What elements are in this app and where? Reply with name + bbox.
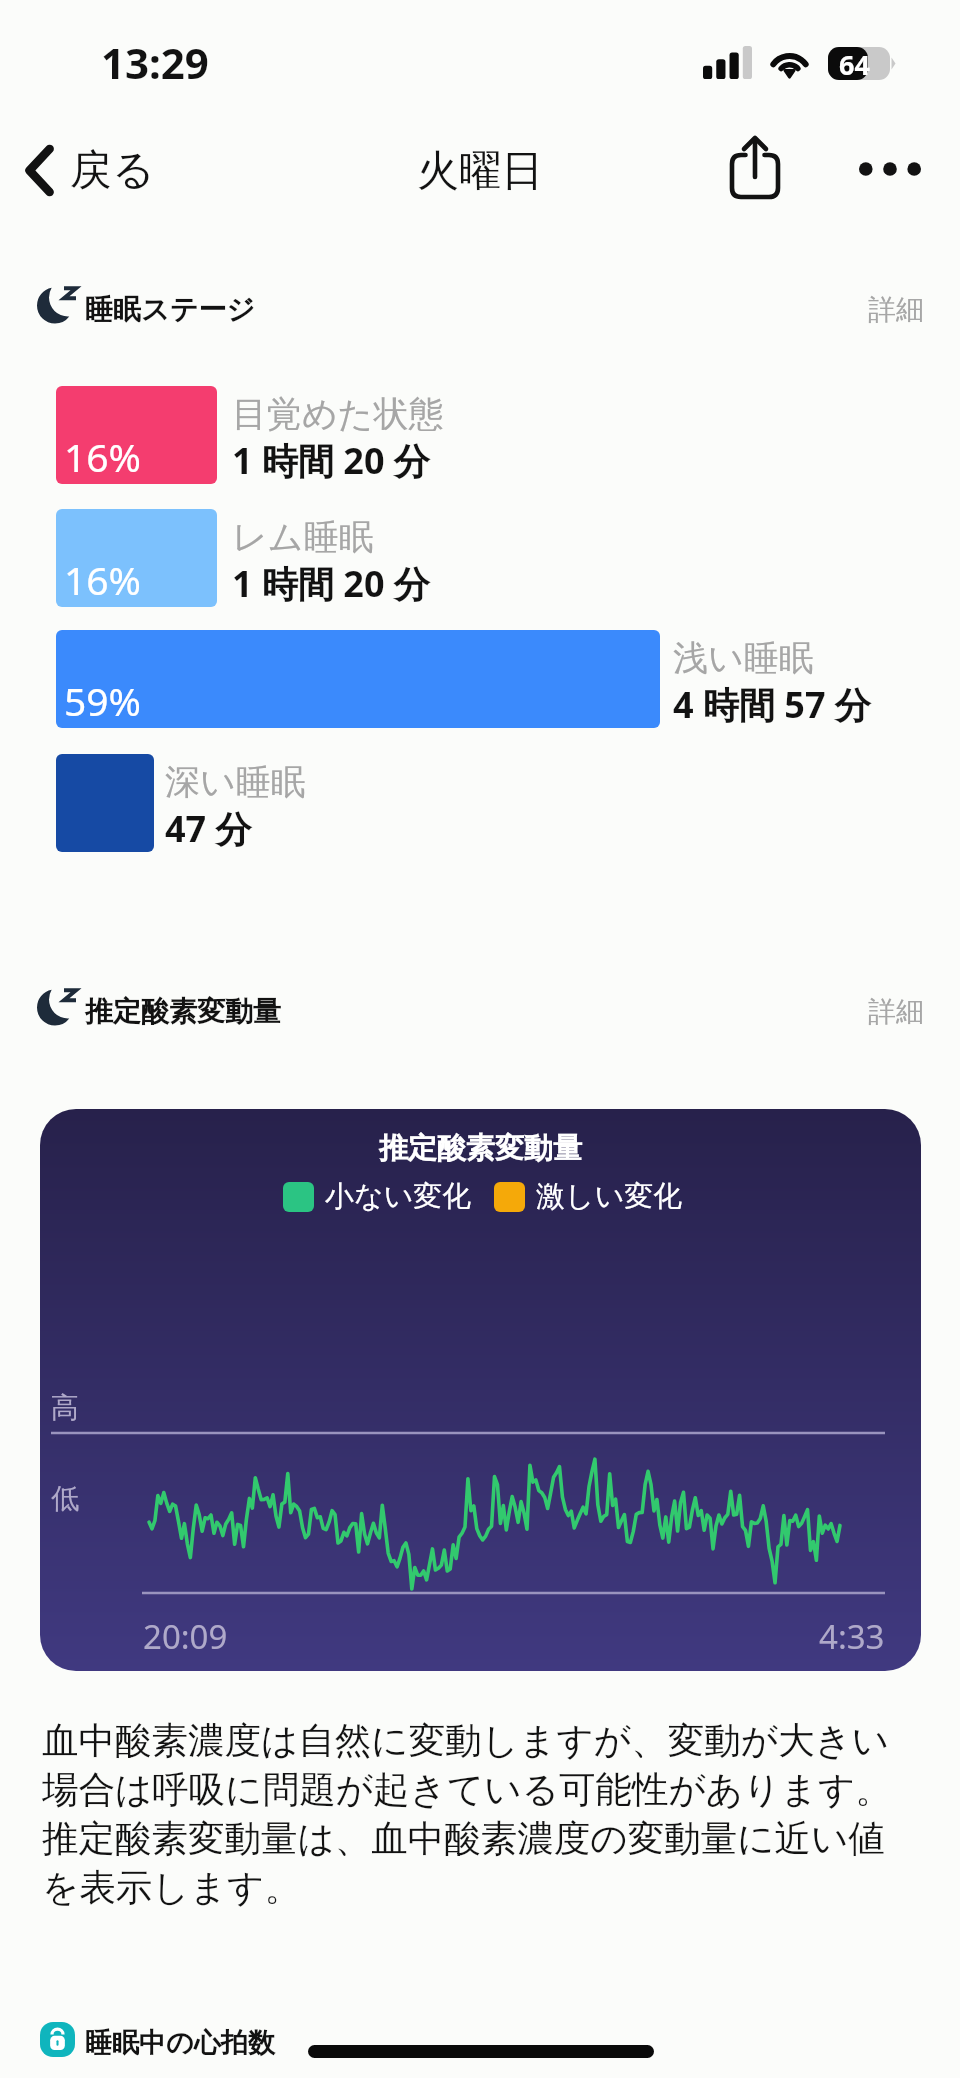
staticText: 1 時間 20 分 — [232, 436, 430, 485]
staticText: 推定酸素変動量 — [85, 994, 281, 1029]
staticText: 戻る — [70, 144, 155, 197]
staticText: 47 分 — [165, 804, 252, 853]
staticText: 血中酸素濃度は自然に変動しますが、変動が大きい — [42, 1718, 890, 1764]
staticText: 浅い睡眠 — [673, 636, 814, 680]
staticText: 火曜日 — [417, 145, 543, 198]
staticText: 64 — [839, 46, 870, 79]
staticText: を表示します。 — [42, 1865, 301, 1911]
button[interactable]: 戻る — [10, 136, 173, 205]
staticText: 20:09 — [143, 1614, 228, 1659]
staticText: 睡眠中の心拍数 — [85, 2026, 275, 2060]
button[interactable]: More options — [840, 125, 940, 213]
button[interactable]: 詳細 — [862, 988, 930, 1035]
staticText: 激しい変化 — [536, 1178, 683, 1215]
button[interactable]: 推定酸素変動量 — [40, 1109, 921, 1671]
staticText: 59% — [64, 674, 142, 727]
staticText: 推定酸素変動量 — [40, 1130, 921, 1167]
button[interactable]: 16% — [56, 386, 217, 484]
staticText: 1 時間 20 分 — [232, 559, 430, 608]
staticText: 睡眠ステージ — [85, 292, 255, 327]
button[interactable]: Sleeping heart rate — [40, 2022, 75, 2057]
staticText: 16% — [64, 553, 142, 606]
staticText: 深い睡眠 — [165, 760, 306, 804]
staticText: 場合は呼吸に問題が起きている可能性があります。 — [42, 1767, 892, 1813]
staticText: 高 — [51, 1390, 79, 1425]
staticText: レム睡眠 — [232, 515, 374, 559]
button[interactable]: 59% — [56, 630, 660, 728]
button[interactable]: 詳細 — [862, 286, 930, 333]
staticText: 4:33 — [819, 1614, 885, 1659]
staticText: 低 — [51, 1481, 79, 1516]
staticText: 小ない変化 — [325, 1178, 472, 1215]
staticText: 目覚めた状態 — [232, 392, 444, 436]
staticText: 詳細 — [868, 292, 924, 327]
staticText: 16% — [64, 430, 142, 483]
button[interactable] — [56, 754, 154, 852]
button[interactable]: Share — [715, 125, 795, 213]
staticText: 4 時間 57 分 — [673, 680, 871, 729]
staticText: 詳細 — [868, 994, 924, 1029]
button[interactable]: 16% — [56, 509, 217, 607]
staticText: 推定酸素変動量は、血中酸素濃度の変動量に近い値 — [42, 1816, 885, 1862]
staticText: 13:29 — [101, 34, 209, 91]
